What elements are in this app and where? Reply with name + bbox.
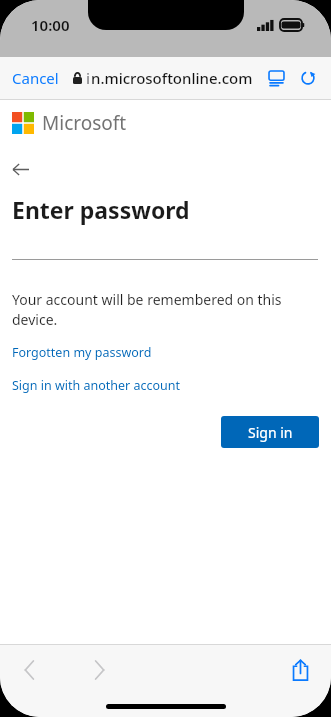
staticText: n.microsoftonline.com <box>91 68 253 88</box>
staticText: Microsoft <box>42 110 127 136</box>
button[interactable]: Page settings <box>261 63 291 93</box>
staticText: Forgotten my password <box>12 344 152 361</box>
button[interactable]: Back <box>12 653 46 687</box>
staticText: Cancel <box>12 68 59 88</box>
staticText: i <box>86 68 91 88</box>
button[interactable]: Forgotten my password <box>12 344 152 361</box>
button[interactable]: Sign in <box>221 416 319 448</box>
button[interactable]: Forward <box>82 653 116 687</box>
button[interactable]: Reload <box>291 61 325 95</box>
button[interactable]: Share <box>283 653 317 687</box>
button[interactable]: Sign in with another account <box>12 377 181 394</box>
staticText: Your account will be remembered on this … <box>12 290 319 329</box>
staticText: 10:00 <box>31 15 70 35</box>
staticText: Sign in <box>248 423 293 442</box>
staticText: Sign in with another account <box>12 377 181 394</box>
button[interactable]: i <box>73 68 261 88</box>
button[interactable]: Cancel <box>0 62 71 94</box>
button[interactable]: Back <box>12 156 38 182</box>
staticText: Enter password <box>12 194 190 225</box>
